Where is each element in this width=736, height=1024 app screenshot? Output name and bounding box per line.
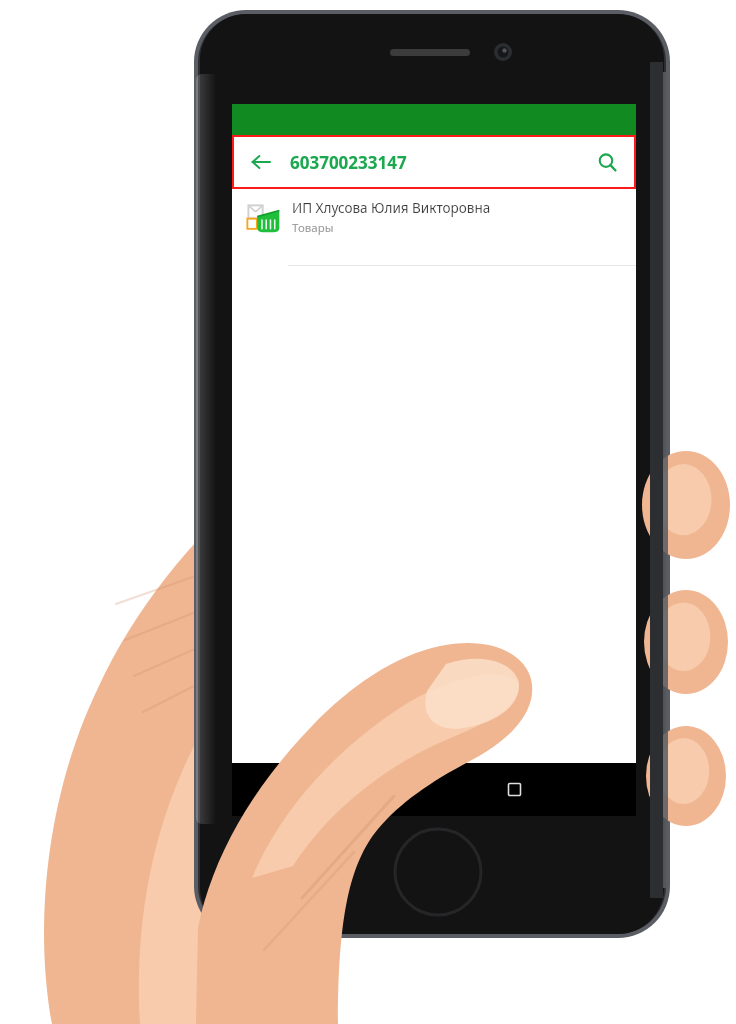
button[interactable]: Back (244, 145, 278, 179)
button[interactable]: Recent apps (466, 763, 563, 816)
button[interactable]: Back (234, 137, 634, 187)
button[interactable]: Search (590, 145, 624, 179)
button[interactable]: ИП Хлусова Юлия Викторовна (232, 189, 636, 249)
button[interactable]: Home (312, 763, 409, 816)
staticText: 603700233147 (290, 151, 407, 174)
staticText: Товары (292, 220, 334, 236)
staticText: ИП Хлусова Юлия Викторовна (292, 199, 491, 217)
